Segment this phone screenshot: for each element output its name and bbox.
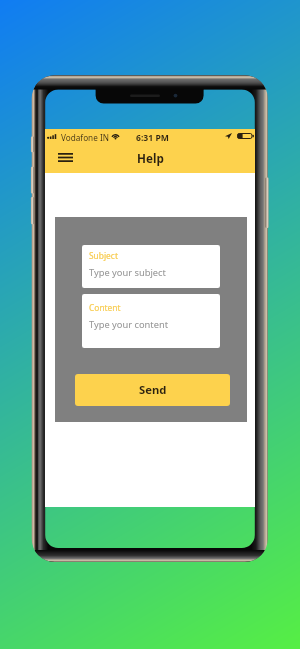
- button[interactable]: Send: [75, 374, 230, 406]
- button[interactable]: Subject: [82, 245, 220, 288]
- staticText: Send: [139, 382, 167, 397]
- staticText: Content: [89, 302, 121, 313]
- button[interactable]: Open navigation menu: [49, 147, 76, 167]
- staticText: Help: [137, 150, 164, 166]
- staticText: Subject: [89, 250, 118, 261]
- staticText: Vodafone IN: [61, 132, 109, 143]
- staticText: Type your content: [89, 318, 169, 331]
- button[interactable]: Content: [82, 294, 220, 348]
- staticText: 6:31 PM: [136, 132, 169, 144]
- staticText: Type your subject: [89, 266, 166, 279]
